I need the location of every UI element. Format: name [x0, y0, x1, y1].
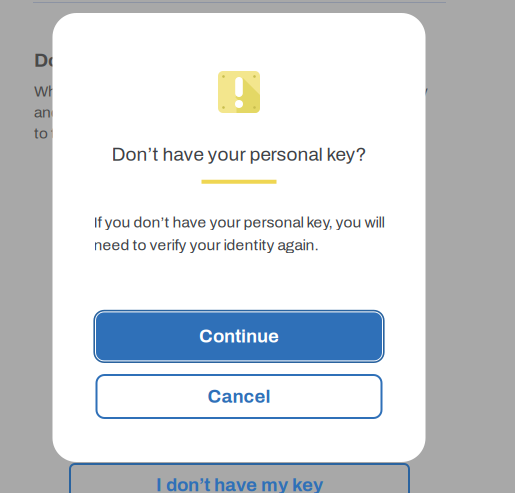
button[interactable]: Continue — [93, 310, 385, 363]
button[interactable]: Cancel — [95, 374, 382, 419]
staticText: Don’t have your personal key? — [111, 144, 366, 165]
staticText: I don’t have my key — [156, 475, 323, 493]
staticText: Continue — [199, 326, 279, 346]
staticText: Cancel — [207, 386, 270, 407]
staticText: If you don’t have your personal key, you… — [93, 214, 384, 253]
button[interactable]: I don’t have my key — [69, 463, 410, 493]
staticText: Don’t have your personal key? — [34, 50, 312, 71]
staticText: When you sign in on a new device we ask … — [34, 83, 428, 142]
